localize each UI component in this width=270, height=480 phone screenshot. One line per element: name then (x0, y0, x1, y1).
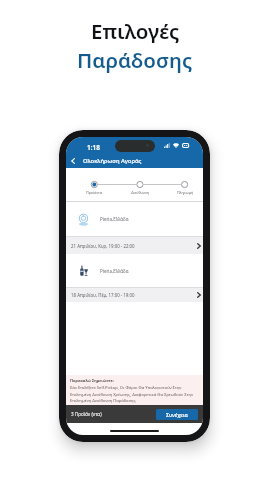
staticText: Pieria,Ελλάδα (100, 216, 129, 222)
staticText: Ολοκλήρωση Αγοράς (83, 157, 142, 165)
staticText: Παράδοσης (77, 46, 193, 74)
staticText: Επιλογές (91, 17, 180, 45)
staticText: Πληρωμή (171, 190, 199, 195)
staticText: 18 Απριλίου, Πέμ, 17:00 - 19:00 (71, 292, 135, 298)
staticText: Παρακαλώ Σημειώστε: (70, 378, 114, 383)
staticText: 1:18 (87, 143, 100, 152)
button[interactable]: Back (66, 154, 80, 168)
staticText: 3 Προϊόν (ντα) (71, 411, 102, 417)
staticText: Εάν Επιλέξετε Self-Pickup, Οι Φόροι Θα Υ… (70, 385, 199, 403)
staticText: Προϊόντα (80, 190, 108, 195)
staticText: 21 Απριλίου, Κυρ, 19:00 - 22:00 (71, 243, 135, 249)
staticText: Pieria,Ελλάδα (100, 268, 129, 274)
button[interactable]: Συνέχεια (156, 409, 198, 420)
staticText: Διεύθυνση (126, 190, 154, 195)
button[interactable]: Pieria,Ελλάδα (66, 202, 203, 254)
staticText: Συνέχεια (166, 411, 188, 418)
button[interactable]: Pieria,Ελλάδα (66, 254, 203, 302)
